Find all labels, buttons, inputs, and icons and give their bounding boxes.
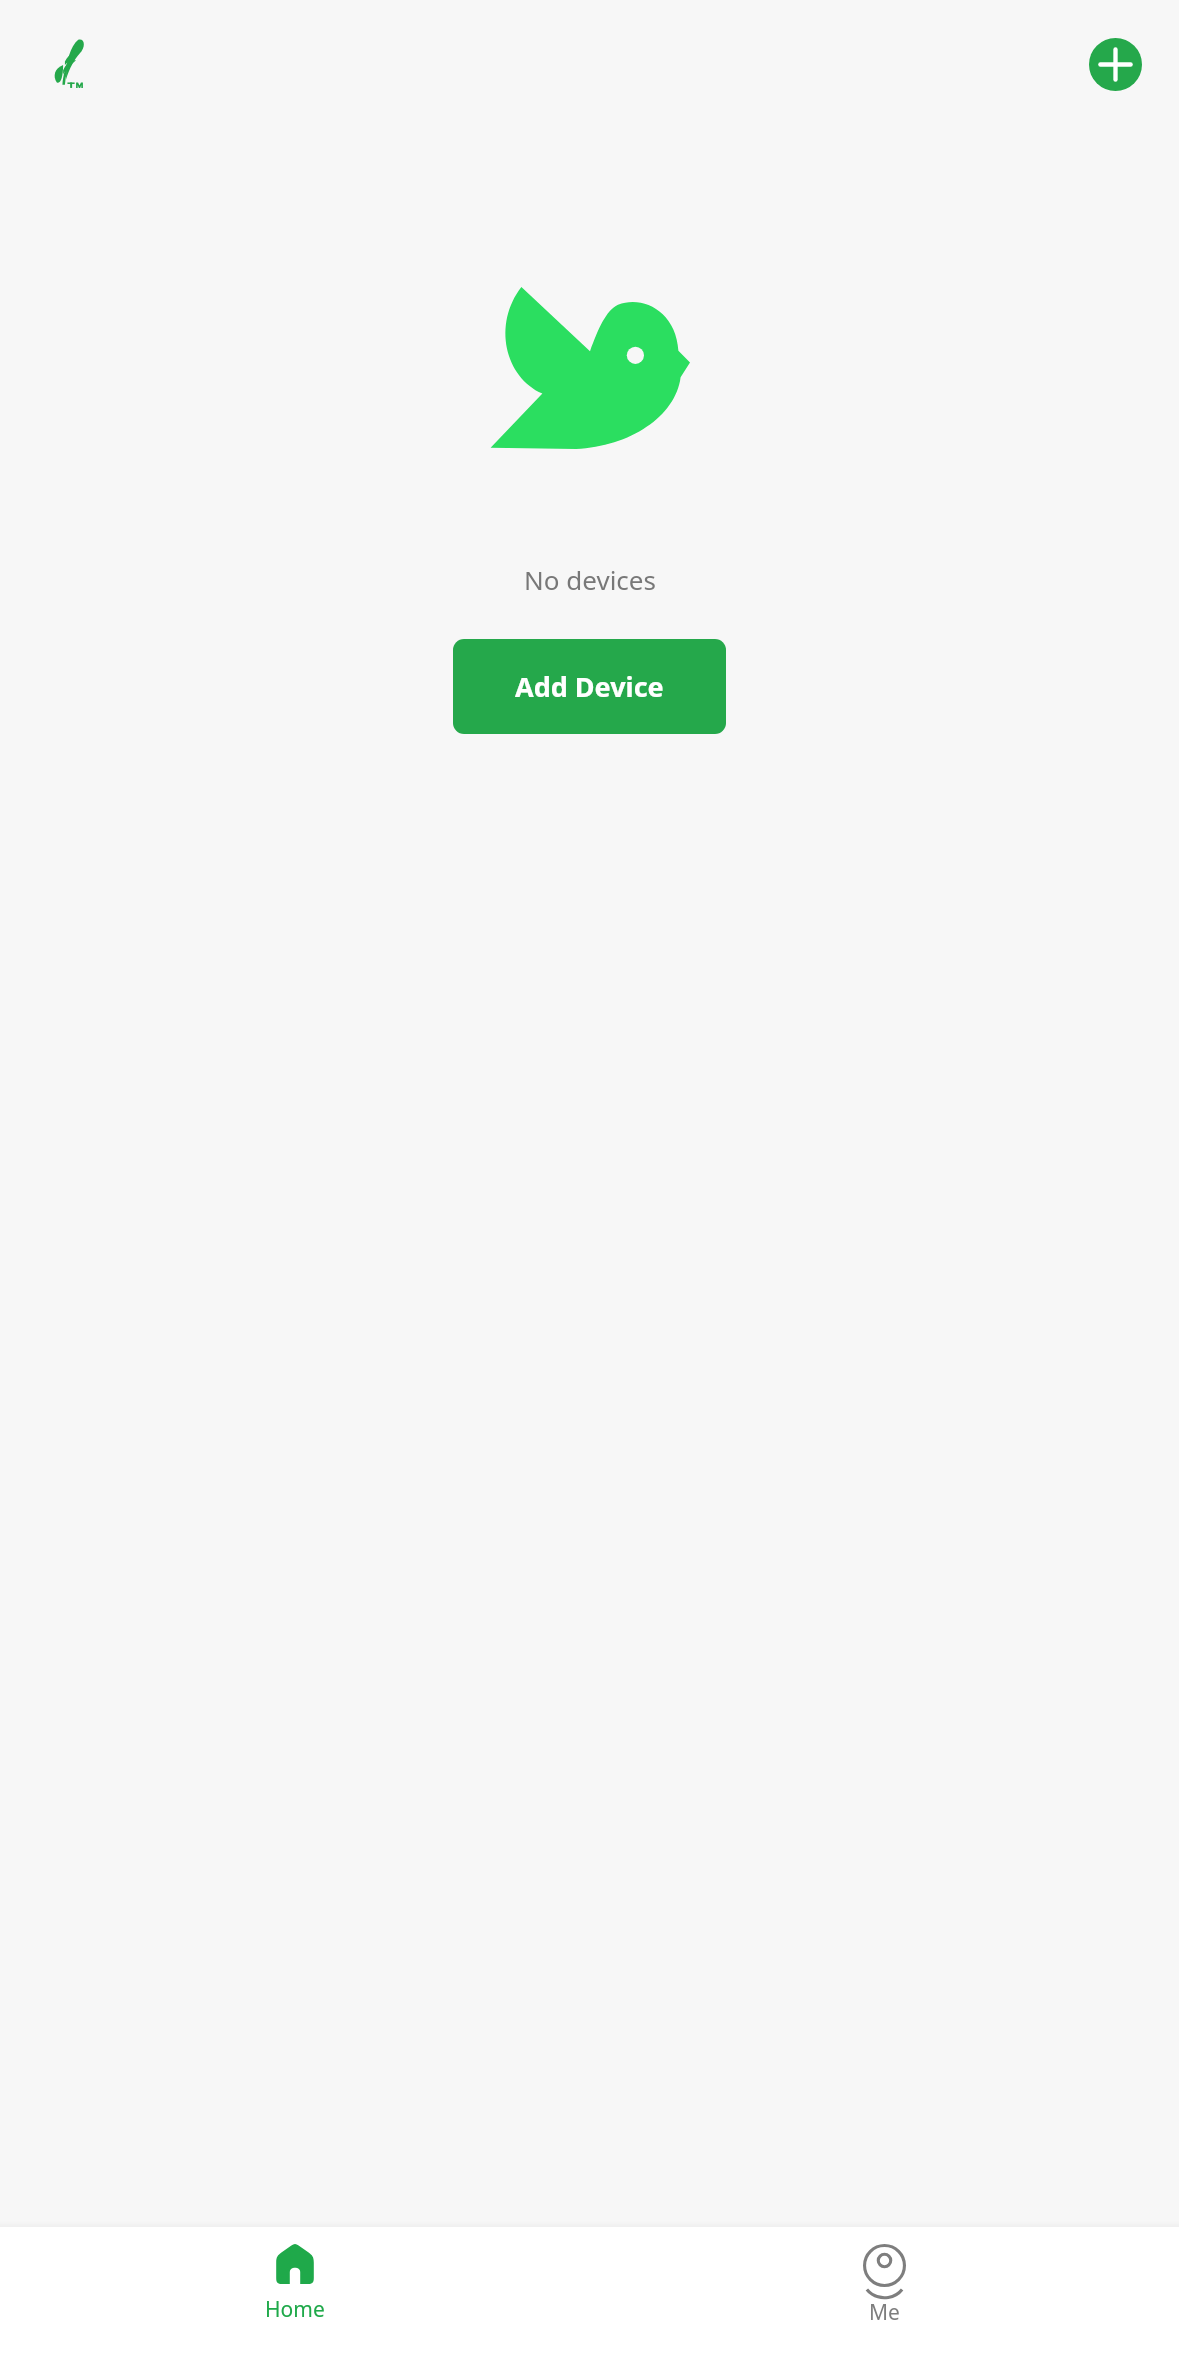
button[interactable]: Add device [1089, 38, 1142, 91]
button[interactable]: Me [589, 2227, 1179, 2356]
staticText: Home [265, 2295, 325, 2324]
button[interactable]: App logo [48, 38, 84, 90]
button[interactable]: Add Device [453, 639, 726, 734]
staticText: No devices [524, 562, 656, 597]
staticText: Me [869, 2298, 900, 2327]
staticText: Add Device [515, 668, 664, 705]
button[interactable]: Home [0, 2227, 589, 2356]
